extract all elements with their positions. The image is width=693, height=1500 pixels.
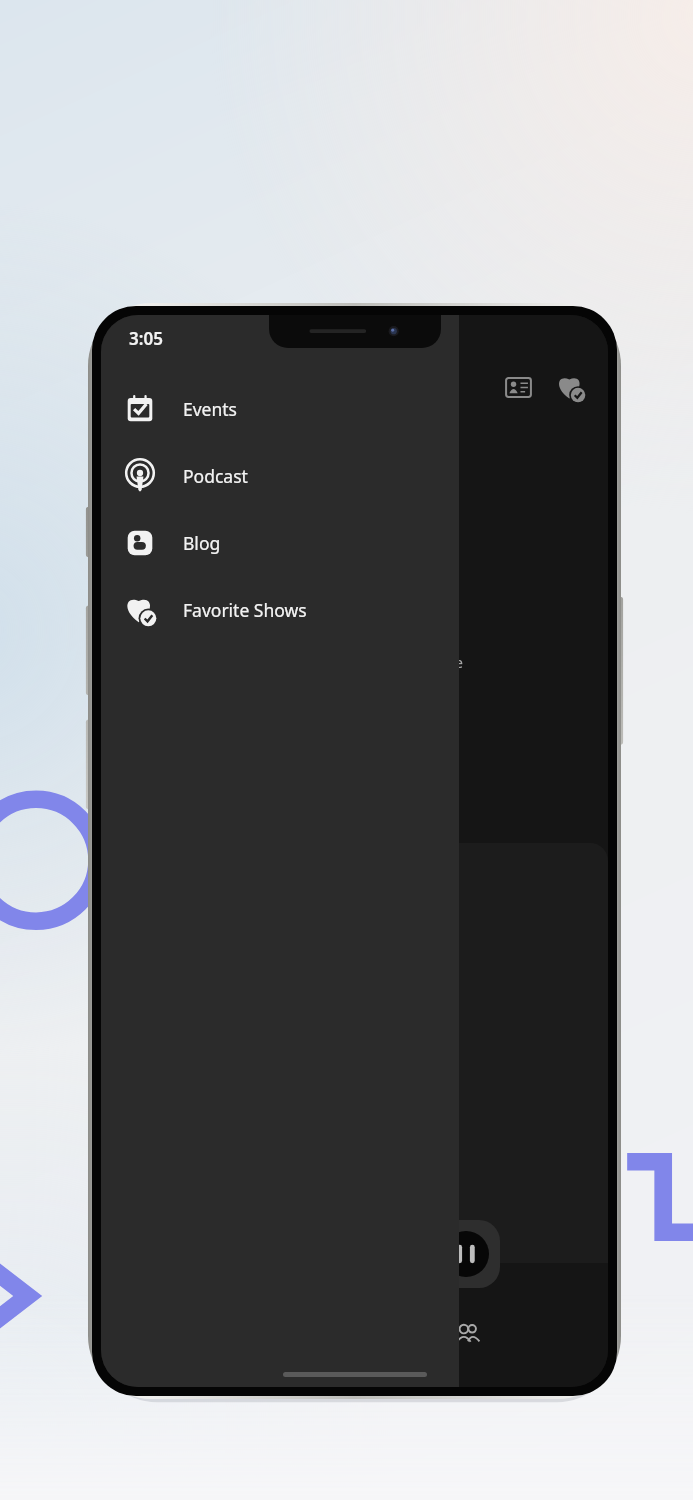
staticText: e	[455, 653, 463, 672]
button[interactable]: Blog	[101, 509, 459, 576]
button[interactable]: Podcast	[101, 442, 459, 509]
staticText: Blog	[183, 531, 221, 555]
staticText: 3:05	[129, 327, 163, 350]
button[interactable]: Favorite Shows	[101, 576, 459, 643]
button[interactable]: Events	[101, 375, 459, 442]
button[interactable]: Listeners	[449, 1315, 487, 1353]
staticText: Podcast	[183, 464, 248, 488]
staticText: Events	[183, 397, 238, 421]
button[interactable]: Favorite Shows	[550, 367, 590, 407]
staticText: Favorite Shows	[183, 598, 307, 622]
button[interactable]: Contact	[498, 367, 538, 407]
button[interactable]: Pause	[432, 1220, 500, 1288]
